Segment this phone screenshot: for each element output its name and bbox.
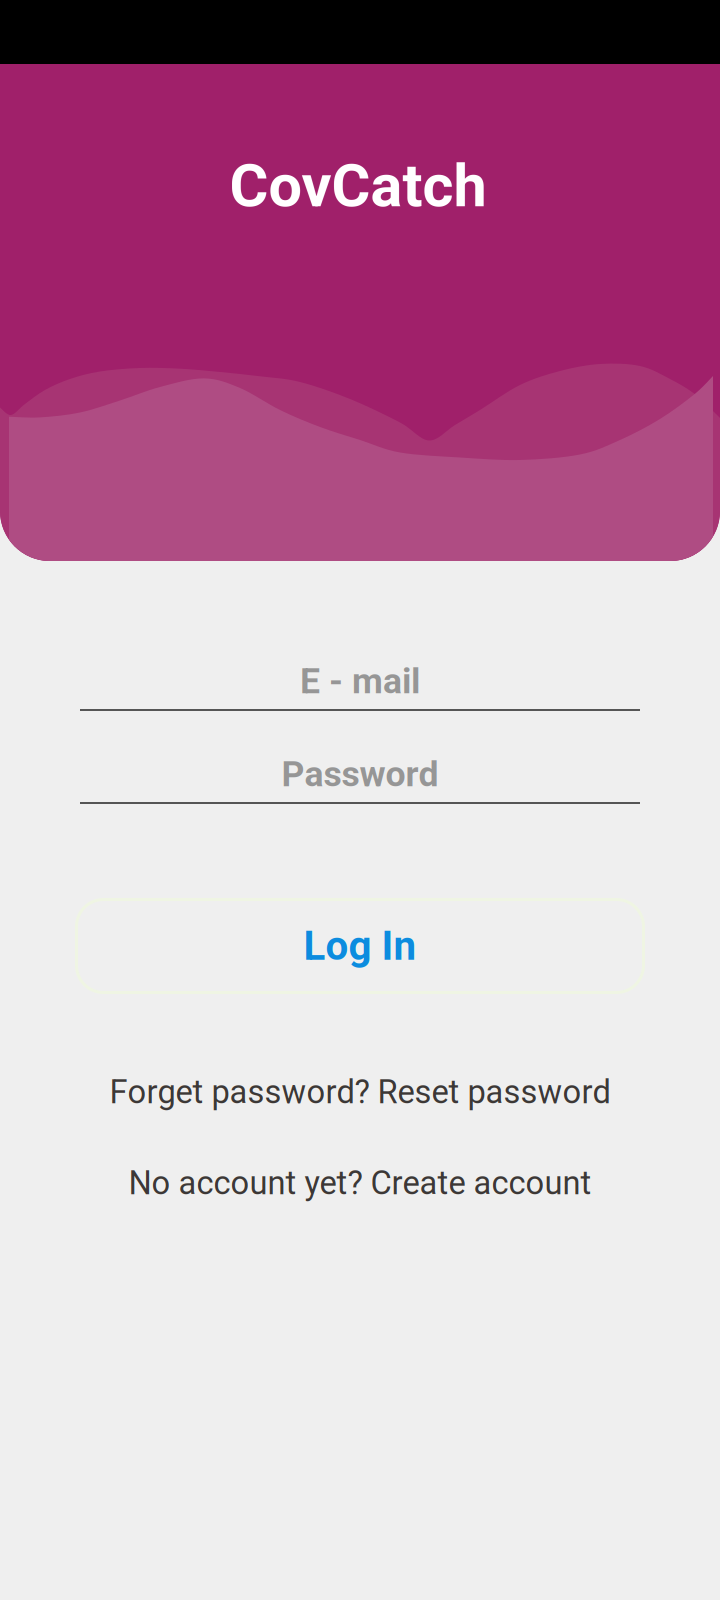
staticText: Password	[281, 753, 438, 795]
staticText: E - mail	[300, 660, 420, 702]
staticText: Forget password? Reset password	[109, 1073, 610, 1111]
staticText: No account yet? Create account	[128, 1164, 591, 1202]
button[interactable]: Forget password? Reset password	[109, 1073, 610, 1111]
staticText: Log In	[303, 922, 416, 970]
button[interactable]: No account yet? Create account	[128, 1164, 591, 1202]
staticText: CovCatch	[229, 151, 486, 221]
button[interactable]: Log In	[76, 899, 643, 992]
